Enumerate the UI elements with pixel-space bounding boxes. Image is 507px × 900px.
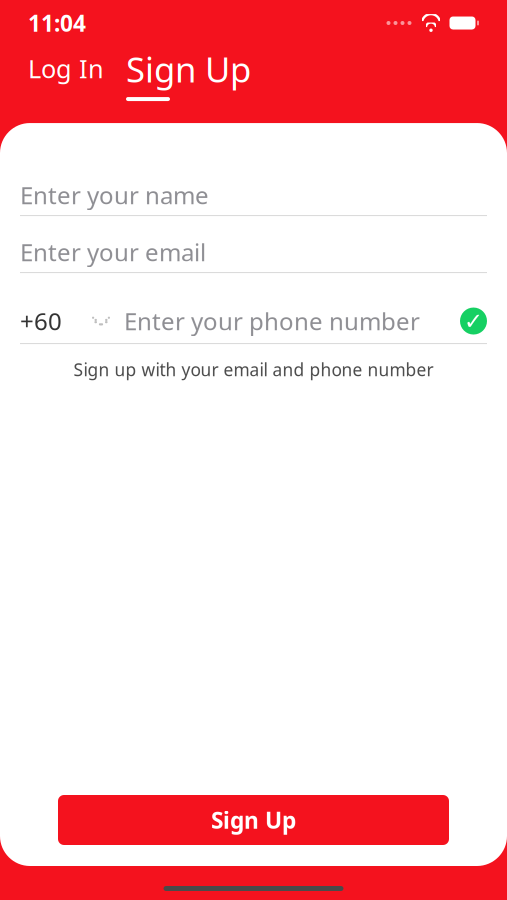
button[interactable]: Sign Up — [126, 46, 251, 101]
staticText: Log In — [28, 52, 104, 85]
staticText: ✓ — [464, 308, 483, 334]
staticText: 11:04 — [28, 8, 86, 38]
button[interactable]: +60 — [20, 300, 124, 342]
staticText: Enter your phone number — [124, 305, 420, 337]
button[interactable]: Sign Up — [58, 795, 449, 845]
button[interactable]: Log In — [24, 52, 108, 95]
staticText: Sign Up — [211, 805, 296, 835]
staticText: Sign up with your email and phone number — [73, 358, 433, 381]
staticText: Enter your name — [20, 179, 209, 211]
staticText: +60 — [20, 305, 62, 337]
staticText: Enter your email — [20, 236, 206, 268]
staticText: Sign Up — [126, 46, 251, 92]
